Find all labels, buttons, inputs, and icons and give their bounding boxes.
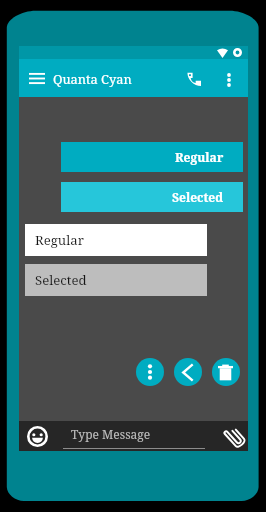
button[interactable]: Type Message: [56, 421, 222, 451]
button[interactable]: More options: [136, 358, 164, 386]
button[interactable]: Emoji: [25, 424, 50, 449]
button[interactable]: Delete: [212, 358, 240, 386]
button[interactable]: Selected: [25, 264, 207, 296]
button[interactable]: Back: [174, 358, 202, 386]
staticText: Regular: [175, 149, 224, 165]
button[interactable]: Attach: [222, 424, 247, 449]
button[interactable]: Regular: [25, 224, 207, 256]
staticText: Quanta Cyan: [53, 70, 132, 87]
staticText: Regular: [35, 231, 84, 249]
button[interactable]: Regular: [61, 142, 243, 172]
staticText: Type Message: [71, 426, 151, 442]
button[interactable]: Call: [181, 66, 207, 92]
button[interactable]: More options: [216, 67, 242, 93]
button[interactable]: Selected: [61, 182, 243, 212]
staticText: Selected: [172, 189, 224, 205]
button[interactable]: Menu: [24, 65, 50, 91]
staticText: Selected: [35, 271, 87, 289]
